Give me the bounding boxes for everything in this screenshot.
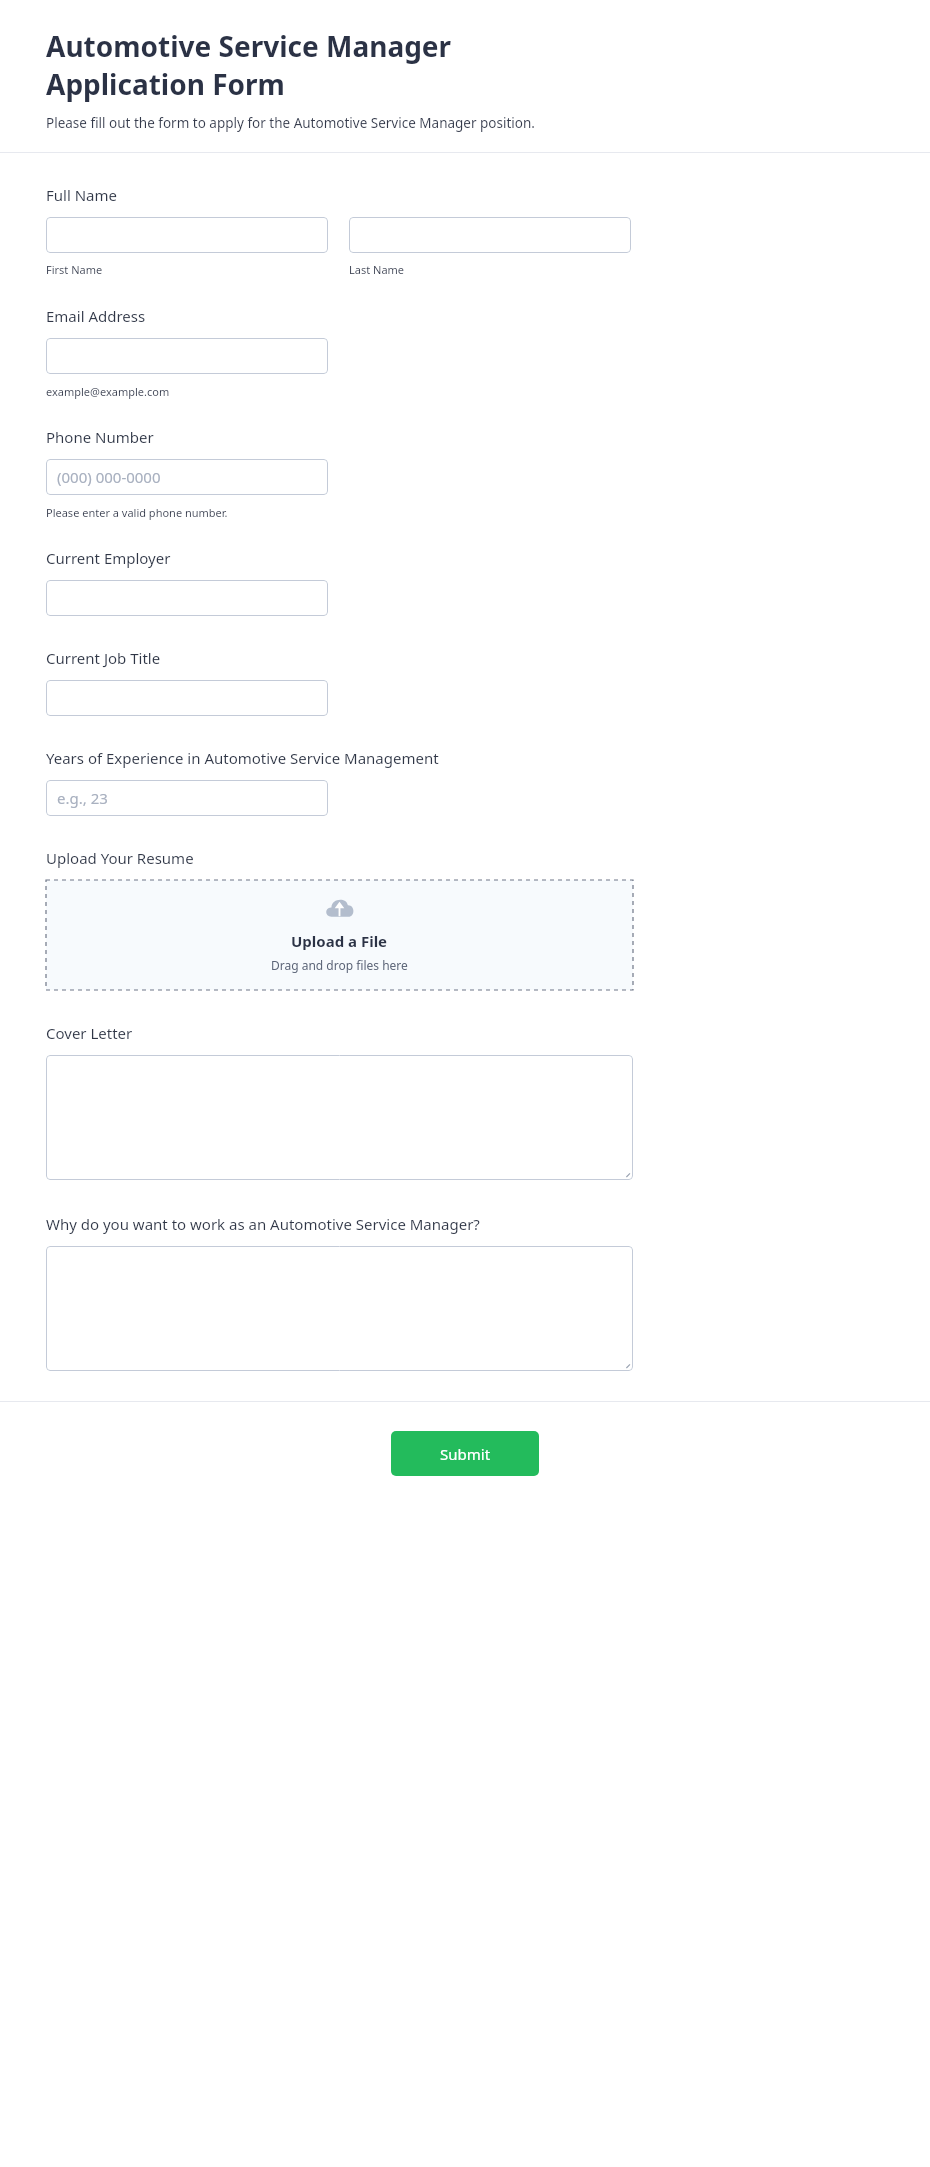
staticText: Please fill out the form to apply for th…: [46, 114, 535, 132]
button[interactable]: [349, 217, 631, 253]
staticText: Years of Experience in Automotive Servic…: [46, 748, 439, 768]
staticText: Why do you want to work as an Automotive…: [46, 1214, 480, 1234]
staticText: Cover Letter: [46, 1023, 133, 1043]
staticText: Last Name: [349, 262, 405, 277]
button[interactable]: [46, 1246, 633, 1371]
staticText: Phone Number: [46, 427, 154, 447]
staticText: e.g., 23: [57, 788, 108, 808]
button[interactable]: Upload a File: [46, 880, 633, 990]
staticText: Email Address: [46, 306, 146, 326]
staticText: Current Employer: [46, 548, 171, 568]
staticText: Please enter a valid phone number.: [46, 505, 228, 520]
button[interactable]: [46, 217, 328, 253]
staticText: Full Name: [46, 185, 117, 205]
staticText: Current Job Title: [46, 648, 161, 668]
staticText: Drag and drop files here: [271, 957, 408, 973]
button[interactable]: Submit: [391, 1431, 539, 1476]
button[interactable]: [46, 680, 328, 716]
staticText: Automotive Service Manager Application F…: [46, 27, 586, 103]
staticText: (000) 000-0000: [57, 467, 161, 487]
button[interactable]: [46, 338, 328, 374]
button[interactable]: [46, 580, 328, 616]
staticText: Upload a File: [291, 931, 388, 951]
button[interactable]: (000) 000-0000: [46, 459, 328, 495]
staticText: Submit: [440, 1444, 491, 1464]
staticText: First Name: [46, 262, 103, 277]
staticText: Upload Your Resume: [46, 848, 194, 868]
button[interactable]: e.g., 23: [46, 780, 328, 816]
staticText: example@example.com: [46, 384, 170, 399]
button[interactable]: [46, 1055, 633, 1180]
